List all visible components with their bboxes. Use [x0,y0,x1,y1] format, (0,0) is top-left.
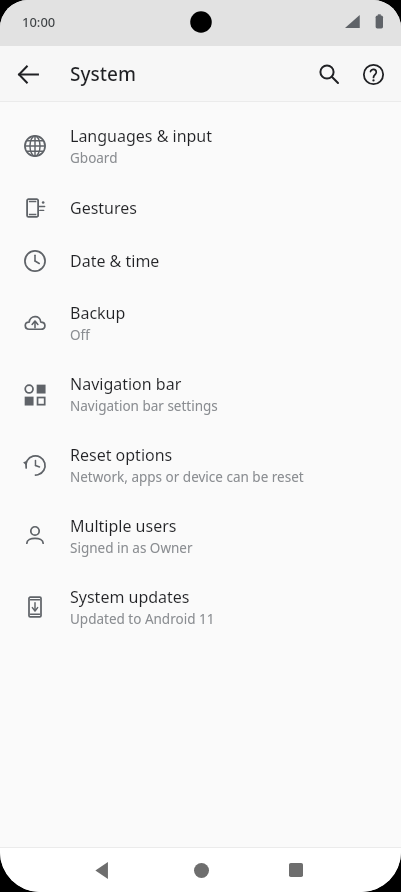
staticText: Updated to Android 11 [70,610,215,628]
staticText: Multiple users [70,515,177,537]
button[interactable]: System updates [0,571,401,642]
button[interactable]: Reset options [0,429,401,500]
button[interactable]: Search [307,52,351,96]
button[interactable]: Languages & input [0,110,401,181]
staticText: Backup [70,302,126,324]
button[interactable]: Back [6,52,50,96]
button[interactable]: Multiple users [0,500,401,571]
staticText: System updates [70,586,190,608]
staticText: Off [70,326,90,344]
staticText: Gestures [70,197,137,219]
button[interactable]: Gestures [0,181,401,234]
staticText: Date & time [70,250,160,272]
staticText: Languages & input [70,125,213,147]
staticText: Reset options [70,444,173,466]
staticText: Gboard [70,149,118,167]
button[interactable]: Backup [0,287,401,358]
button[interactable]: Recent apps [274,848,318,892]
staticText: Navigation bar settings [70,397,218,415]
staticText: Navigation bar [70,373,182,395]
staticText: Network, apps or device can be reset [70,468,304,486]
button[interactable]: Navigation bar [0,358,401,429]
button[interactable]: Help [351,52,395,96]
staticText: System [70,61,136,87]
button[interactable]: Back [80,848,124,892]
staticText: 10:00 [22,13,56,31]
staticText: Signed in as Owner [70,539,193,557]
button[interactable]: Date & time [0,234,401,287]
button[interactable]: Home [179,848,223,892]
